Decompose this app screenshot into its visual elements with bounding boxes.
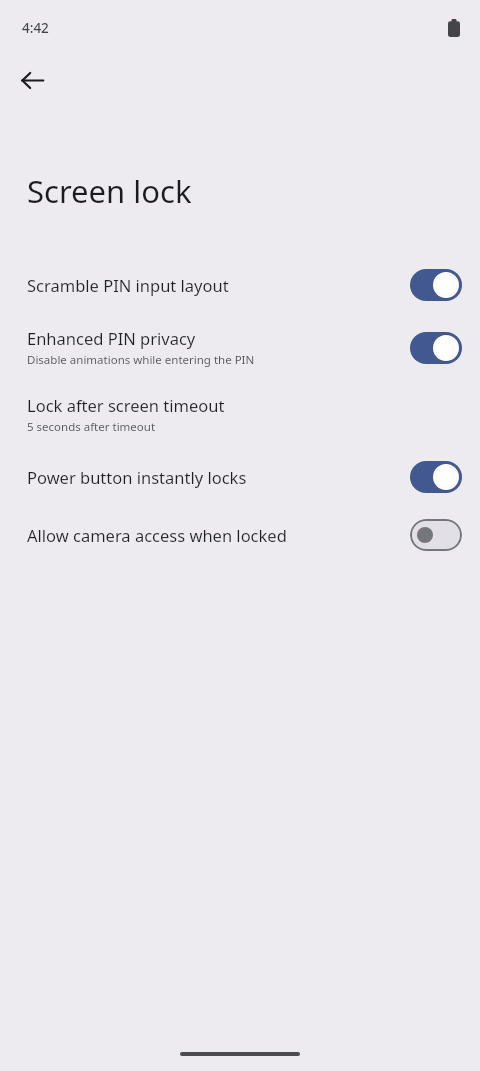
button[interactable]: Toggle on [410, 461, 462, 493]
staticText: Disable animations while entering the PI… [27, 352, 255, 368]
button[interactable]: Back [8, 56, 56, 104]
button[interactable]: Enhanced PIN privacy [0, 314, 480, 381]
staticText: Enhanced PIN privacy [27, 327, 196, 349]
button[interactable]: Power button instantly locks [0, 448, 480, 506]
staticText: Lock after screen timeout [27, 394, 225, 416]
button[interactable]: Toggle off [410, 519, 462, 551]
staticText: 4:42 [22, 19, 49, 37]
staticText: Power button instantly locks [27, 466, 247, 488]
staticText: 5 seconds after timeout [27, 419, 156, 435]
button[interactable]: Scramble PIN input layout [0, 256, 480, 314]
staticText: Screen lock [27, 170, 192, 212]
button[interactable]: Allow camera access when locked [0, 506, 480, 564]
button[interactable]: Toggle on [410, 269, 462, 301]
button[interactable]: Lock after screen timeout [0, 381, 480, 448]
staticText: Scramble PIN input layout [27, 274, 229, 296]
button[interactable]: Toggle on [410, 332, 462, 364]
staticText: Allow camera access when locked [27, 524, 287, 546]
